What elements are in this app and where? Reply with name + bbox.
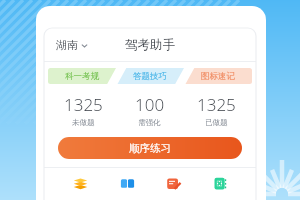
staticText: 顺序练习 [129,142,171,155]
staticText: 1325 [64,93,103,116]
button[interactable]: 1325 [50,93,116,127]
staticText: 已做题 [205,118,228,127]
staticText: 科一考规 [65,71,99,82]
button[interactable]: 100 [116,93,183,127]
staticText: 驾考助手 [125,37,175,53]
button[interactable]: Notes [156,173,190,193]
staticText: 图标速记 [201,71,235,82]
button[interactable]: Book [110,173,144,193]
button[interactable]: 答题技巧 [116,68,184,84]
button[interactable]: 科一考规 [48,68,116,84]
staticText: 需强化 [138,118,161,127]
staticText: 1325 [197,93,236,116]
staticText: 100 [135,93,165,116]
staticText: 答题技巧 [133,71,167,82]
staticText: 未做题 [72,118,95,127]
button[interactable]: 湖南 [54,35,90,55]
button[interactable]: Layers [63,173,97,193]
button[interactable]: Records [203,173,237,193]
button[interactable]: 1325 [183,93,250,127]
button[interactable]: 图标速记 [184,68,252,84]
staticText: 湖南 [56,38,78,52]
button[interactable]: 顺序练习 [58,137,242,159]
